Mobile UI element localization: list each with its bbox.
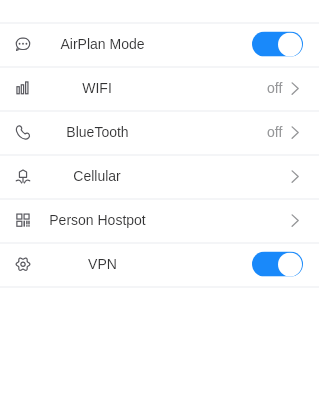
button[interactable]: Cellular <box>0 156 319 198</box>
button[interactable]: Airplane mode <box>0 24 319 66</box>
other: VPN <box>16 257 30 271</box>
staticText: off <box>267 124 283 140</box>
other: Airplane mode <box>16 37 30 51</box>
button[interactable]: VPN <box>0 244 319 286</box>
other: Personal hotspot <box>16 213 30 227</box>
button[interactable]: Open Person Hostpot settings <box>291 200 299 242</box>
button[interactable]: Toggle <box>252 252 303 277</box>
button[interactable]: Wi-Fi <box>0 68 319 110</box>
button[interactable]: Open WIFI settings <box>291 68 299 110</box>
button[interactable]: Toggle <box>252 31 303 56</box>
button[interactable]: Personal hotspot <box>0 200 319 242</box>
staticText: VPN <box>88 256 117 272</box>
other: Wi-Fi <box>16 81 30 95</box>
button[interactable]: Open Cellular settings <box>291 156 299 198</box>
button[interactable]: Open BlueTooth settings <box>291 112 299 154</box>
staticText: WIFI <box>82 80 112 96</box>
staticText: AirPlan Mode <box>60 36 145 52</box>
other: Cellular <box>16 169 30 183</box>
staticText: Cellular <box>73 168 121 184</box>
staticText: off <box>267 80 283 96</box>
staticText: Person Hostpot <box>49 212 146 228</box>
button[interactable]: Bluetooth <box>0 112 319 154</box>
staticText: BlueTooth <box>66 124 129 140</box>
other: Bluetooth <box>16 125 30 139</box>
